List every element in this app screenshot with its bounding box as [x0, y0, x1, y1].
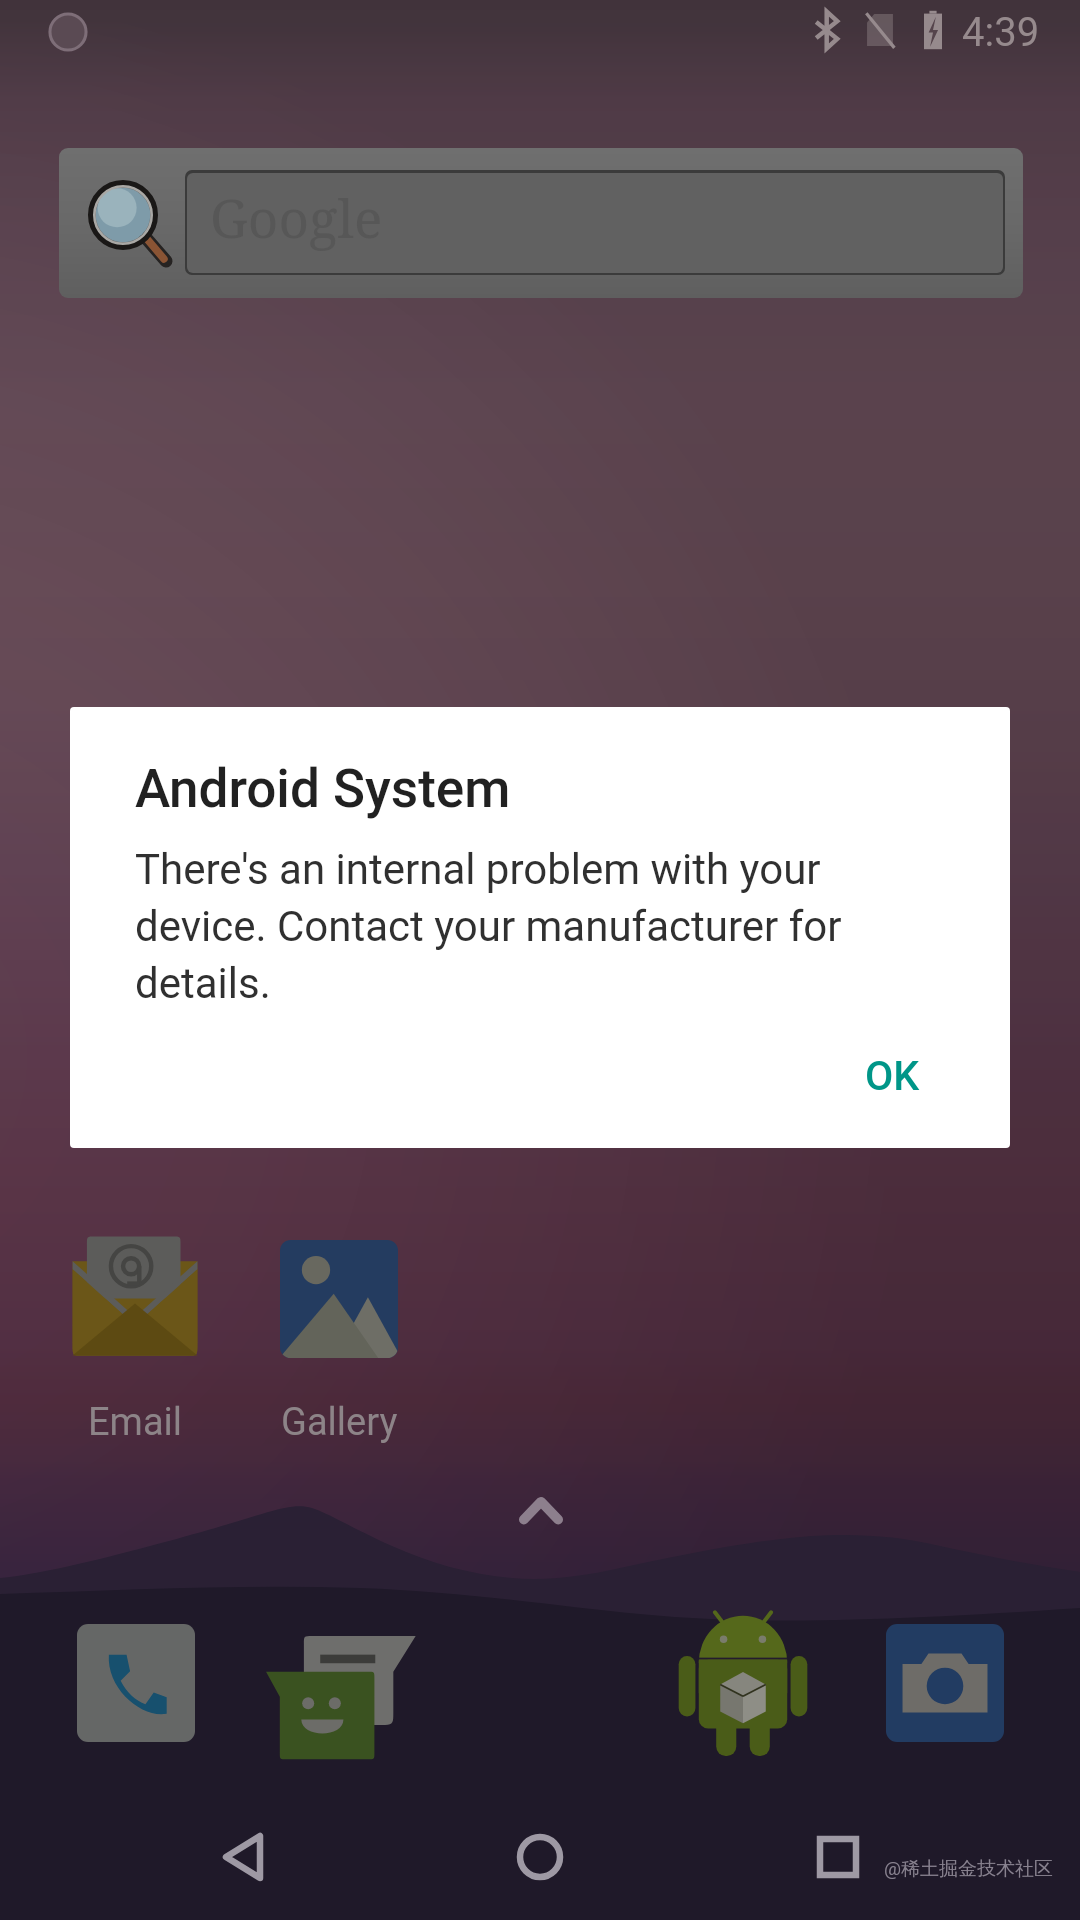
staticText: There's an internal problem with your de…	[135, 845, 865, 1008]
button[interactable]: All apps	[520, 1494, 562, 1526]
button[interactable]: Camera	[886, 1624, 1004, 1742]
button[interactable]: Gallery	[237, 1240, 441, 1445]
button[interactable]: Home	[492, 1812, 588, 1902]
button[interactable]: Google search	[59, 148, 1023, 298]
staticText: OK	[865, 1052, 920, 1100]
staticText: @稀土掘金技术社区	[884, 1857, 1054, 1881]
button[interactable]: Phone	[77, 1624, 195, 1742]
staticText: 4:39	[962, 9, 1040, 56]
staticText: Email	[88, 1400, 183, 1445]
button[interactable]: Clock notification	[46, 10, 90, 54]
button[interactable]: Messaging	[254, 1602, 426, 1764]
button[interactable]: Recent apps	[790, 1812, 886, 1902]
button[interactable]: Email	[33, 1234, 237, 1445]
button[interactable]: Android	[676, 1598, 810, 1766]
staticText: Android System	[135, 758, 511, 820]
staticText: Gallery	[281, 1400, 398, 1445]
button[interactable]: Back	[194, 1812, 290, 1902]
button[interactable]: OK	[822, 1035, 962, 1117]
staticText: Google	[210, 181, 383, 253]
